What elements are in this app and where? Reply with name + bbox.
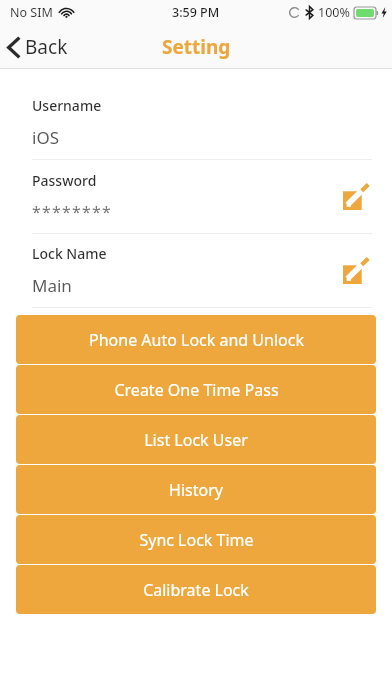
staticText: Main bbox=[32, 274, 72, 297]
staticText: List Lock User bbox=[144, 429, 248, 451]
staticText: History bbox=[169, 479, 223, 501]
button[interactable]: Create One Time Pass bbox=[16, 365, 376, 414]
staticText: 3:59 PM bbox=[172, 4, 220, 21]
staticText: Back bbox=[25, 34, 68, 60]
button[interactable]: Back bbox=[0, 28, 80, 66]
button[interactable]: Edit Password bbox=[342, 183, 370, 211]
staticText: Password bbox=[32, 171, 97, 190]
button[interactable]: Sync Lock Time bbox=[16, 515, 376, 564]
staticText: Create One Time Pass bbox=[114, 379, 279, 401]
button[interactable]: List Lock User bbox=[16, 415, 376, 464]
button[interactable]: Phone Auto Lock and Unlock bbox=[16, 315, 376, 364]
staticText: Username bbox=[32, 96, 102, 115]
button[interactable]: Edit Lock Name bbox=[342, 257, 370, 285]
staticText: Phone Auto Lock and Unlock bbox=[89, 329, 304, 351]
staticText: 100% bbox=[318, 4, 350, 21]
button[interactable]: Calibrate Lock bbox=[16, 565, 376, 614]
staticText: Setting bbox=[162, 34, 231, 60]
staticText: iOS bbox=[32, 126, 59, 149]
staticText: No SIM bbox=[10, 4, 53, 21]
button[interactable]: History bbox=[16, 465, 376, 514]
staticText: Lock Name bbox=[32, 244, 107, 263]
staticText: Calibrate Lock bbox=[143, 579, 249, 601]
staticText: Sync Lock Time bbox=[139, 529, 254, 551]
staticText: ******** bbox=[32, 201, 113, 223]
